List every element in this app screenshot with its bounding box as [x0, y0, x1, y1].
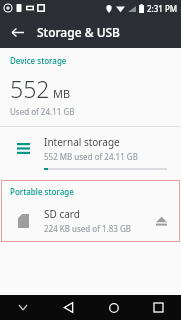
button[interactable]: Eject SD card	[150, 210, 172, 232]
staticText: 552 MB used of 24.11 GB	[44, 151, 138, 162]
button[interactable]: Internal storage	[0, 127, 181, 174]
staticText: SD card	[44, 207, 80, 221]
staticText: 2:31 PM	[147, 3, 178, 14]
staticText: Device storage	[10, 55, 67, 66]
staticText: 552	[10, 73, 50, 104]
button[interactable]: Recent apps	[136, 295, 181, 320]
staticText: Internal storage	[44, 135, 120, 149]
button[interactable]: Back	[46, 295, 91, 320]
staticText: Portable storage	[10, 186, 74, 197]
staticText: Used of 24.11 GB	[10, 106, 75, 117]
staticText: Storage & USB	[37, 24, 120, 40]
staticText: MB	[53, 86, 71, 101]
button[interactable]: Home	[91, 295, 136, 320]
staticText: 224 KB used of 1.83 GB	[44, 223, 131, 234]
button[interactable]: SD card	[1, 205, 180, 236]
button[interactable]: Back	[4, 19, 30, 45]
button[interactable]: Collapse	[0, 295, 46, 320]
